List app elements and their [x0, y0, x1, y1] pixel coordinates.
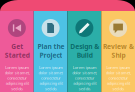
button[interactable]: Design & Build — [67, 11, 101, 92]
staticText: Design & Build — [70, 42, 99, 60]
staticText: Lorem ipsum dolor sit amet, consectetur … — [38, 65, 63, 91]
staticText: Lorem ipsum dolor sit amet, consectetur … — [72, 65, 97, 91]
button[interactable]: Review & Ship — [101, 11, 135, 92]
staticText: Lorem ipsum dolor sit amet, consectetur … — [4, 65, 29, 91]
staticText: Lorem ipsum dolor sit amet, consectetur … — [106, 65, 131, 91]
staticText: Get Started — [4, 42, 29, 60]
staticText: Review & Ship — [103, 42, 134, 60]
button[interactable]: Plan the Project — [34, 11, 68, 92]
staticText: Plan the Project — [37, 42, 64, 60]
button[interactable]: Get Started — [0, 11, 34, 92]
